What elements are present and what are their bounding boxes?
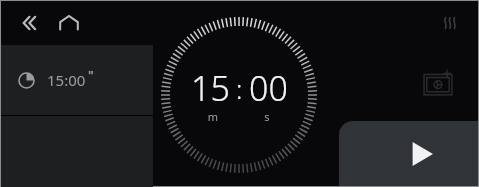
staticText: s bbox=[252, 109, 282, 124]
staticText: 00 bbox=[249, 65, 288, 111]
button[interactable]: Back bbox=[9, 3, 49, 43]
staticText: m bbox=[198, 109, 228, 124]
button[interactable]: Start bbox=[339, 121, 478, 186]
staticText: : bbox=[236, 71, 243, 106]
button[interactable]: Convection oven mode bbox=[339, 45, 478, 122]
staticText: " bbox=[88, 67, 94, 83]
button[interactable]: 15:00 bbox=[1, 45, 153, 115]
button[interactable]: Home bbox=[49, 3, 89, 43]
staticText: 15:00 bbox=[47, 70, 86, 90]
button[interactable]: Heat indicator bbox=[430, 3, 470, 43]
staticText: 15 bbox=[191, 65, 230, 111]
button[interactable]: 15 bbox=[159, 15, 319, 175]
